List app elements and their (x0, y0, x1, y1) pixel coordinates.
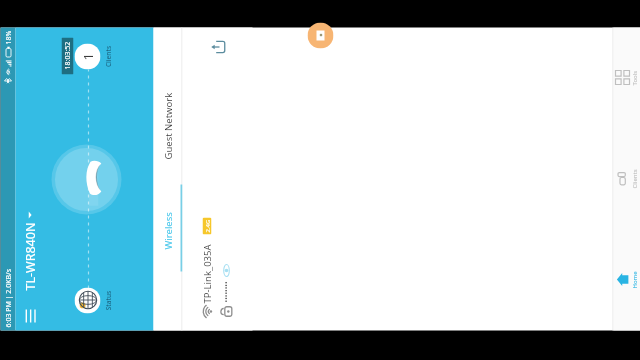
button[interactable]: Assistant (307, 22, 333, 48)
button[interactable]: TP-Link_035A (196, 27, 216, 330)
staticText: 18% (3, 30, 13, 44)
staticText: Clients (630, 168, 638, 188)
staticText: TL-WR840N (21, 222, 38, 290)
button[interactable]: Clients (613, 128, 640, 229)
button[interactable]: Guest Network (153, 74, 182, 178)
button[interactable]: Tools (613, 27, 640, 128)
button[interactable]: Wireless (153, 178, 182, 282)
staticText: Wireless (161, 211, 174, 249)
staticText: Tools (630, 70, 638, 85)
staticText: Status (103, 283, 112, 317)
button[interactable]: Log out (206, 36, 228, 58)
staticText: 6:03 PM | 2.0KB/s (3, 268, 13, 327)
staticText: 1 (78, 52, 96, 60)
button[interactable]: Status (74, 287, 100, 313)
staticText: 18:03:52 (62, 41, 72, 69)
button[interactable]: Router (51, 144, 121, 214)
staticText: Clients (103, 39, 112, 73)
staticText: 2.4G (203, 219, 211, 232)
button[interactable]: Show password (219, 263, 233, 277)
button[interactable]: Clients (74, 43, 100, 69)
staticText: •••••••• (221, 280, 231, 302)
button[interactable]: Home (613, 229, 640, 330)
button[interactable]: TL-WR840N (15, 211, 44, 290)
staticText: TP-Link_035A (200, 243, 213, 303)
staticText: Home (630, 270, 638, 288)
staticText: Guest Network (161, 92, 174, 159)
button[interactable]: Menu (15, 301, 44, 330)
